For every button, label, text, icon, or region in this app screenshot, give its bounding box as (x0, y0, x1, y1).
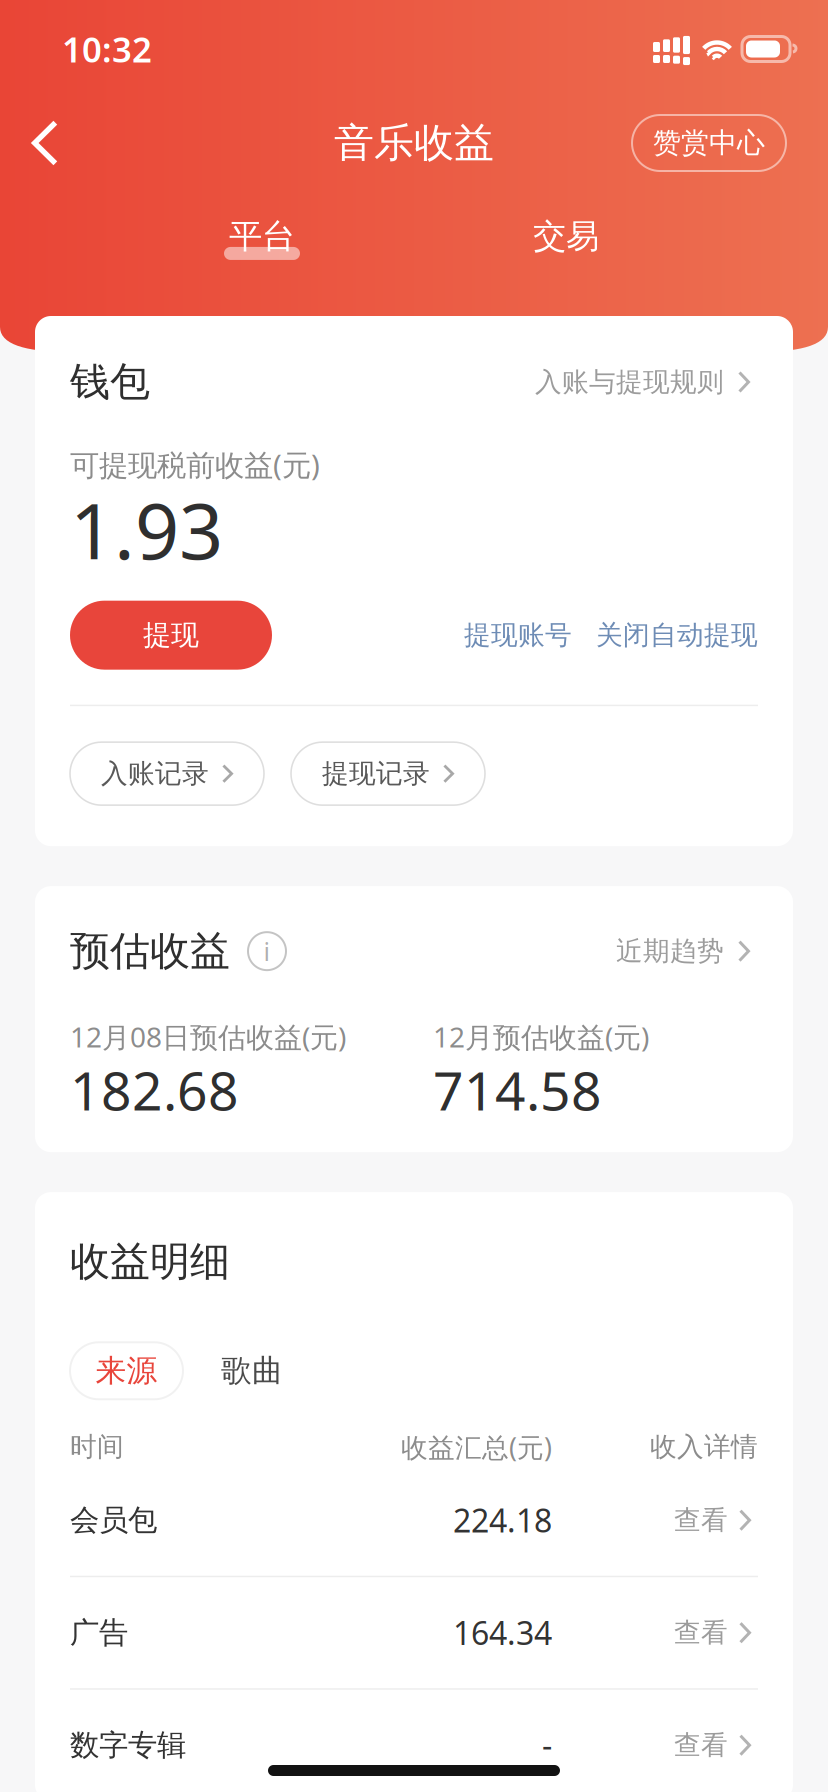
staticText: 平台 (229, 216, 295, 257)
staticText: 收入详情 (650, 1431, 758, 1463)
staticText: 音乐收益 (334, 118, 494, 167)
staticText: 数字专辑 (70, 1727, 186, 1763)
button[interactable]: 提现记录 (291, 742, 485, 805)
button[interactable]: 歌曲 (221, 1342, 283, 1399)
staticText: 12月08日预估收益(元) (70, 1018, 346, 1055)
button[interactable]: 广告 (70, 1577, 758, 1688)
button[interactable]: 数字专辑 (70, 1690, 758, 1792)
button[interactable]: 入账记录 (70, 742, 264, 805)
button[interactable]: 近期趋势 (616, 923, 758, 980)
button[interactable]: 来源 (70, 1342, 183, 1399)
staticText: 预估收益 (70, 927, 230, 976)
button[interactable]: 会员包 (70, 1465, 758, 1576)
staticText: 224.18 (453, 1499, 552, 1541)
button[interactable]: 提现 (70, 601, 272, 670)
staticText: 入账与提现规则 (535, 366, 724, 398)
staticText: 入账记录 (101, 757, 209, 790)
staticText: 182.68 (70, 1054, 239, 1125)
button[interactable]: 提现账号 (464, 619, 572, 652)
staticText: 交易 (533, 216, 599, 257)
staticText: 时间 (70, 1431, 124, 1463)
staticText: 可提现税前收益(元) (70, 445, 320, 484)
staticText: 钱包 (70, 357, 150, 406)
staticText: 提现记录 (322, 757, 430, 790)
button[interactable]: 赞赏中心 (632, 115, 786, 171)
staticText: 收益汇总(元) (401, 1429, 552, 1465)
staticText: 查看 (674, 1616, 728, 1649)
staticText: 收益明细 (70, 1237, 230, 1286)
staticText: i (263, 934, 270, 968)
staticText: 广告 (70, 1615, 128, 1651)
staticText: 来源 (95, 1352, 157, 1390)
button[interactable]: 交易 (414, 216, 718, 260)
staticText: 提现 (143, 618, 199, 652)
button[interactable]: 平台 (110, 216, 414, 260)
staticText: 10:32 (62, 26, 152, 72)
button[interactable]: 关闭自动提现 (596, 619, 758, 652)
staticText: 1.93 (70, 478, 223, 581)
staticText: 歌曲 (221, 1352, 283, 1390)
staticText: 关闭自动提现 (596, 619, 758, 652)
button[interactable]: Back (13, 101, 77, 185)
button[interactable]: 入账与提现规则 (535, 354, 758, 410)
staticText: 12月预估收益(元) (433, 1018, 649, 1055)
staticText: 会员包 (70, 1502, 157, 1538)
staticText: 查看 (674, 1729, 728, 1762)
staticText: 164.34 (453, 1611, 552, 1654)
staticText: - (542, 1724, 552, 1766)
staticText: 714.58 (433, 1054, 602, 1125)
staticText: 近期趋势 (616, 935, 724, 968)
staticText: 赞赏中心 (653, 126, 765, 160)
staticText: 提现账号 (464, 619, 572, 652)
staticText: 查看 (674, 1504, 728, 1537)
